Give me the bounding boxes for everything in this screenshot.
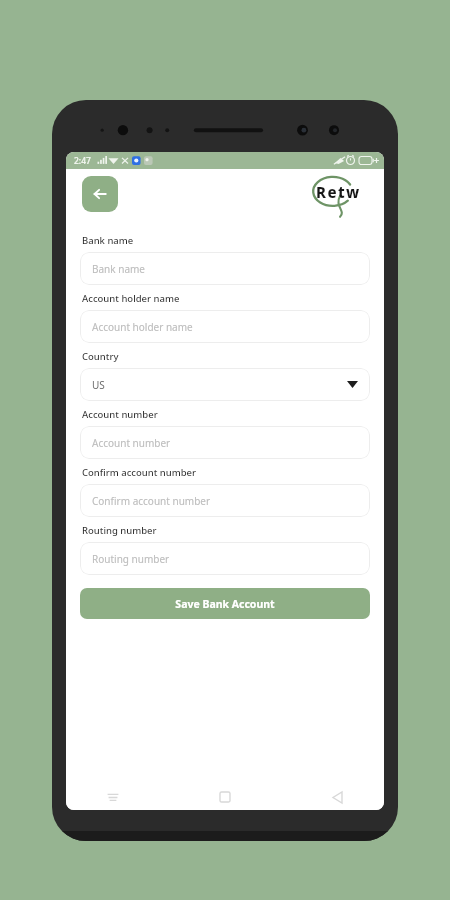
staticText: Bank name — [82, 234, 134, 247]
staticText: Account holder name — [82, 292, 180, 305]
button[interactable]: Home — [212, 784, 238, 810]
button[interactable]: Routing number — [80, 542, 370, 575]
staticText: US — [92, 378, 105, 392]
button[interactable]: Account holder name — [80, 310, 370, 343]
button[interactable]: Select country — [80, 368, 370, 401]
button[interactable]: Back — [324, 784, 350, 810]
staticText: Routing number — [92, 552, 170, 566]
staticText: Routing number — [82, 524, 157, 537]
button[interactable]: Confirm account number — [80, 484, 370, 517]
staticText: Account holder name — [92, 320, 193, 334]
staticText: Save Bank Account — [175, 597, 275, 611]
staticText: Confirm account number — [92, 494, 211, 508]
button[interactable]: Back — [82, 176, 118, 212]
staticText: Bank name — [92, 262, 146, 276]
button[interactable]: Account number — [80, 426, 370, 459]
button[interactable]: Bank name — [80, 252, 370, 285]
staticText: Retw — [316, 182, 361, 202]
staticText: Account number — [82, 408, 158, 421]
button[interactable]: Save Bank Account — [80, 588, 370, 619]
staticText: Account number — [92, 436, 171, 450]
staticText: 2:47 — [74, 155, 91, 167]
staticText: Confirm account number — [82, 466, 197, 479]
staticText: Country — [82, 350, 119, 363]
button[interactable]: Recent apps — [100, 784, 126, 810]
